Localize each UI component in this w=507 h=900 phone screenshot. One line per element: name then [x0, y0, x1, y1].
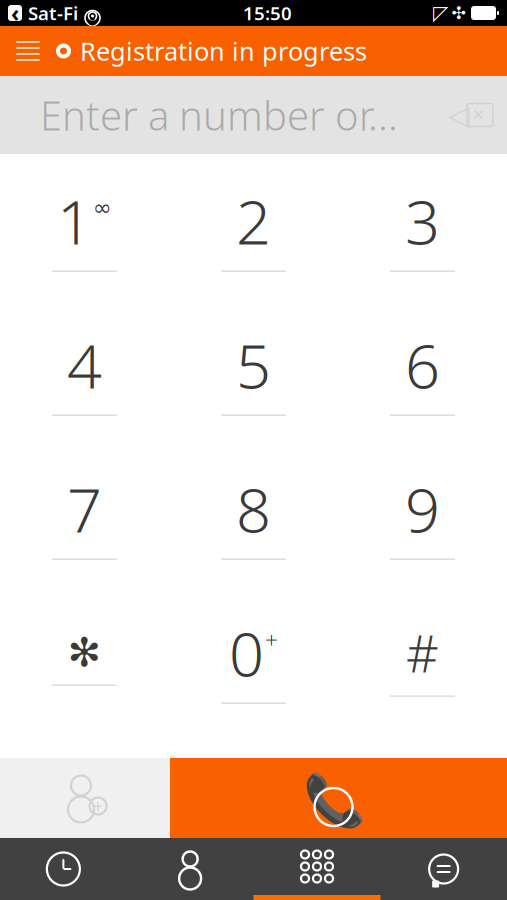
staticText: 7 [67, 468, 102, 549]
button[interactable]: 5 [169, 298, 338, 442]
staticText: ✣ [451, 3, 466, 23]
staticText: ‹ [11, 0, 19, 28]
button[interactable]: 4 [0, 298, 169, 442]
button[interactable]: 9 [338, 442, 507, 586]
button[interactable]: Messages [380, 838, 507, 900]
button[interactable]: 8 [169, 442, 338, 586]
staticText: 0 [229, 612, 264, 693]
button[interactable]: Add contact [0, 758, 170, 838]
staticText: ◸ [433, 2, 448, 24]
button[interactable]: ✻ [0, 586, 169, 730]
staticText: 📞 [303, 772, 366, 830]
staticText: Sat-Fi [28, 1, 78, 25]
staticText: Enter a number or... [40, 88, 398, 141]
staticText: 2 [236, 180, 271, 261]
staticText: 3 [405, 180, 440, 261]
button[interactable]: Recents [0, 838, 127, 900]
button[interactable]: 2 [169, 154, 338, 298]
button[interactable]: Keypad [253, 838, 380, 900]
staticText: 6 [405, 324, 440, 405]
button[interactable]: # [338, 586, 507, 730]
button[interactable]: 0 [169, 586, 338, 730]
staticText: 5 [236, 324, 271, 405]
staticText: Registration in progress [80, 34, 367, 68]
staticText: 15:50 [243, 1, 292, 25]
staticText: 9 [405, 468, 440, 549]
button[interactable]: 7 [0, 442, 169, 586]
button[interactable]: 1 [0, 154, 169, 298]
staticText: ✻ [67, 630, 101, 675]
staticText: ✕ [471, 106, 484, 124]
button[interactable]: Menu [0, 26, 56, 76]
button[interactable]: 3 [338, 154, 507, 298]
button[interactable]: Delete [437, 80, 507, 150]
staticText: + [93, 794, 103, 817]
staticText: ∞ [93, 195, 112, 221]
staticText: ◁ [448, 99, 470, 131]
staticText: 4 [67, 324, 102, 405]
button[interactable]: 6 [338, 298, 507, 442]
staticText: 1 [57, 180, 92, 261]
button[interactable]: Contacts [127, 838, 254, 900]
staticText: # [406, 619, 439, 686]
staticText: 8 [236, 468, 271, 549]
button[interactable]: Call [170, 758, 507, 838]
staticText: + [265, 625, 278, 655]
